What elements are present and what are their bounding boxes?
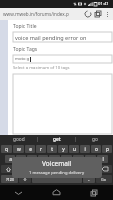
button[interactable]: Tabs [93,9,103,19]
staticText: g [53,156,56,163]
button[interactable]: c [38,165,48,173]
staticText: s [20,156,23,163]
button[interactable]: n [73,165,84,173]
button[interactable]: j [73,155,84,163]
staticText: y [62,146,65,153]
button[interactable]: w [13,145,24,153]
staticText: q [5,146,8,153]
button[interactable]: h [61,155,72,163]
staticText: moto g [15,56,30,62]
button[interactable]: d [27,155,37,163]
button[interactable]: g [49,155,60,163]
staticText: h [65,156,68,163]
button[interactable]: get [38,135,75,144]
button[interactable]: o [91,145,101,153]
button[interactable]: k [85,155,96,163]
button[interactable]: go [76,135,113,144]
staticText: j [78,156,80,163]
button[interactable]: t [47,145,57,153]
button[interactable]: Voice input [19,175,31,183]
staticText: Topic Tags [13,46,38,53]
button[interactable]: Home [37,185,75,200]
staticText: i [84,146,86,153]
button[interactable]: s [16,155,26,163]
button[interactable]: v [49,165,60,173]
button[interactable]: Reload [83,9,93,19]
staticText: Voicemail [42,159,72,168]
button[interactable]: . [83,175,95,183]
button[interactable]: Hide keyboard [0,185,37,200]
staticText: voice mail pending error on [15,34,87,41]
button[interactable] [32,175,82,183]
staticText: r [40,146,42,153]
button[interactable]: a [5,155,15,163]
button[interactable]: Recent apps [75,185,113,200]
staticText: c [42,166,45,173]
button[interactable]: q [1,145,12,153]
staticText: get [53,136,61,143]
staticText: good [13,136,25,143]
staticText: 1 message pending delivery [29,170,85,176]
button[interactable]: good [0,135,37,144]
staticText: x [31,166,34,173]
staticText: ?123 [6,177,14,182]
staticText: Topic Title [13,23,37,30]
button[interactable]: voice mail pending error on [13,32,112,42]
staticText: n [77,166,80,173]
button[interactable]: e [25,145,35,153]
staticText: p [106,146,109,153]
button[interactable]: r [36,145,46,153]
staticText: t [51,146,53,153]
staticText: v [53,166,56,173]
button[interactable]: ?123 [1,175,18,183]
staticText: l [102,156,104,163]
button[interactable]: p [102,145,112,153]
staticText: d [31,156,34,163]
staticText: k [89,156,92,163]
button[interactable]: Go [96,175,112,183]
button[interactable]: Shift [1,165,15,173]
staticText: 01:41 [98,1,109,7]
staticText: go [92,136,98,143]
staticText: . [88,176,90,183]
staticText: Select a maximum of 10 tags [13,65,70,71]
staticText: Go [101,177,107,182]
staticText: w [17,146,21,153]
staticText: u [73,146,76,153]
button[interactable]: Delete [97,165,112,173]
button[interactable]: b [61,165,72,173]
button[interactable]: i [80,145,90,153]
staticText: a [9,156,12,163]
staticText: f [42,156,44,163]
staticText: www.rnweb.in/forums/index.p [3,11,83,17]
button[interactable]: moto g [13,55,112,63]
button[interactable]: u [69,145,79,153]
button[interactable]: y [58,145,68,153]
button[interactable]: x [27,165,37,173]
button[interactable]: l [97,155,108,163]
staticText: o [95,146,98,153]
staticText: b [65,166,68,173]
button[interactable]: More options [103,10,112,19]
staticText: e [29,146,32,153]
button[interactable]: f [38,155,48,163]
